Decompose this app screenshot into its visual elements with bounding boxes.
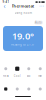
staticText: ⋯: [39, 3, 44, 9]
staticText: Eco: [27, 74, 31, 78]
button[interactable]: Auto: [34, 20, 43, 24]
button[interactable]: Cool: [11, 66, 23, 78]
staticText: 19.0°: [12, 30, 34, 42]
staticText: Heating to 21.0°: [11, 43, 35, 46]
staticText: 9:41: [2, 0, 9, 4]
button[interactable]: Back: [2, 3, 7, 8]
staticText: Auto: [35, 21, 42, 24]
staticText: Heat: [3, 74, 9, 78]
button[interactable]: More options: [39, 3, 44, 8]
button[interactable]: Schedule: [23, 86, 34, 92]
button[interactable]: Fan: [34, 66, 46, 78]
staticText: Thermostat: [11, 3, 34, 9]
staticText: Fan: [38, 74, 42, 78]
staticText: Cool: [14, 74, 21, 78]
button[interactable]: Home: [0, 86, 11, 92]
staticText: ‹: [3, 2, 5, 10]
button[interactable]: Settings: [34, 86, 46, 92]
button[interactable]: Heat: [0, 66, 11, 78]
button[interactable]: Rooms: [11, 86, 23, 92]
button[interactable]: Eco: [23, 66, 34, 78]
staticText: Living Room: [14, 11, 31, 15]
